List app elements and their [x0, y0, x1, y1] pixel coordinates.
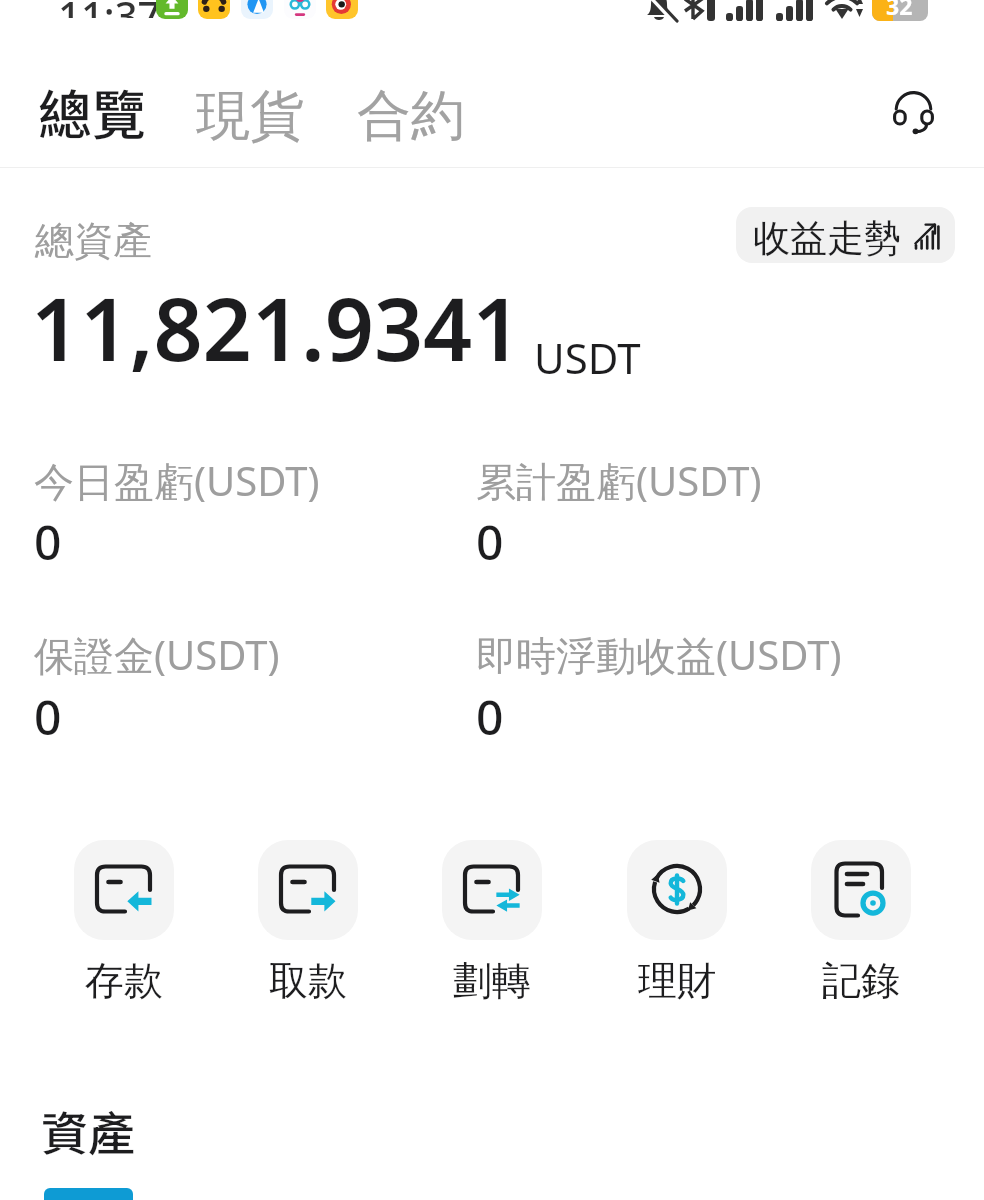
- staticText: 記錄: [822, 956, 900, 1005]
- staticText: 累計盈虧(USDT): [476, 453, 762, 508]
- staticText: 0: [476, 509, 504, 574]
- staticText: 即時浮動收益(USDT): [476, 627, 842, 682]
- staticText: 11:37: [58, 0, 161, 18]
- staticText: 合約: [357, 82, 465, 150]
- button[interactable]: 存款: [74, 840, 174, 1005]
- staticText: 現貨: [196, 82, 304, 150]
- staticText: 32: [886, 0, 913, 20]
- button[interactable]: 資產: [41, 1096, 135, 1164]
- staticText: 劃轉: [453, 956, 531, 1005]
- button[interactable]: 理財: [627, 840, 727, 1005]
- staticText: 資產: [41, 1096, 135, 1164]
- button[interactable]: 收益走勢: [736, 207, 955, 263]
- staticText: 0: [34, 684, 62, 749]
- staticText: USDT: [534, 329, 641, 386]
- staticText: 0: [476, 684, 504, 749]
- staticText: 收益走勢: [753, 215, 901, 262]
- staticText: 總覽: [38, 72, 146, 150]
- staticText: 取款: [269, 956, 347, 1005]
- staticText: 保證金(USDT): [34, 627, 280, 682]
- staticText: 0: [34, 509, 62, 574]
- staticText: 存款: [85, 956, 163, 1005]
- staticText: 總資產: [35, 216, 152, 265]
- button[interactable]: 記錄: [811, 840, 911, 1005]
- button[interactable]: Customer support: [879, 77, 948, 146]
- staticText: 理財: [638, 956, 716, 1005]
- button[interactable]: 現貨: [196, 82, 304, 150]
- staticText: 11,821.9341: [31, 269, 522, 386]
- button[interactable]: 合約: [357, 82, 465, 150]
- staticText: 今日盈虧(USDT): [34, 453, 320, 508]
- button[interactable]: 總覽: [38, 72, 146, 150]
- button[interactable]: 劃轉: [442, 840, 542, 1005]
- button[interactable]: 取款: [258, 840, 358, 1005]
